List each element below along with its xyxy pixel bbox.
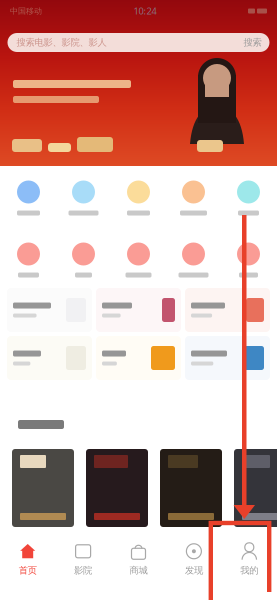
button[interactable] [12, 449, 74, 527]
button[interactable]: 发现 [166, 527, 222, 592]
button[interactable] [56, 178, 111, 218]
staticText: 搜索电影、影院、影人 [16, 37, 106, 48]
button[interactable] [7, 288, 92, 332]
button[interactable] [166, 178, 221, 218]
button[interactable] [1, 240, 56, 280]
button[interactable] [111, 178, 166, 218]
button[interactable] [160, 449, 222, 527]
button[interactable] [1, 178, 56, 218]
button[interactable] [166, 240, 221, 280]
staticText: 中国移动 [10, 6, 42, 16]
button[interactable] [96, 336, 181, 380]
button[interactable] [221, 240, 276, 280]
button[interactable] [111, 240, 166, 280]
button[interactable] [86, 449, 148, 527]
staticText: 首页 [19, 565, 37, 576]
button[interactable] [7, 336, 92, 380]
button[interactable]: 我的 [222, 527, 277, 592]
button[interactable]: 影院 [55, 527, 111, 592]
button[interactable] [234, 449, 277, 527]
staticText: 发现 [185, 565, 203, 576]
button[interactable] [56, 240, 111, 280]
button[interactable]: 搜索电影、影院、影人 [7, 33, 269, 52]
button[interactable]: 商城 [111, 527, 166, 592]
staticText: 10:24 [133, 5, 156, 17]
button[interactable] [221, 178, 276, 218]
button[interactable] [185, 336, 270, 380]
staticText: 搜索 [243, 37, 261, 48]
staticText: 影院 [74, 565, 92, 576]
button[interactable] [96, 288, 181, 332]
button[interactable] [185, 288, 270, 332]
button[interactable]: 首页 [0, 527, 55, 592]
staticText: 商城 [129, 565, 147, 576]
staticText: 我的 [240, 565, 258, 576]
